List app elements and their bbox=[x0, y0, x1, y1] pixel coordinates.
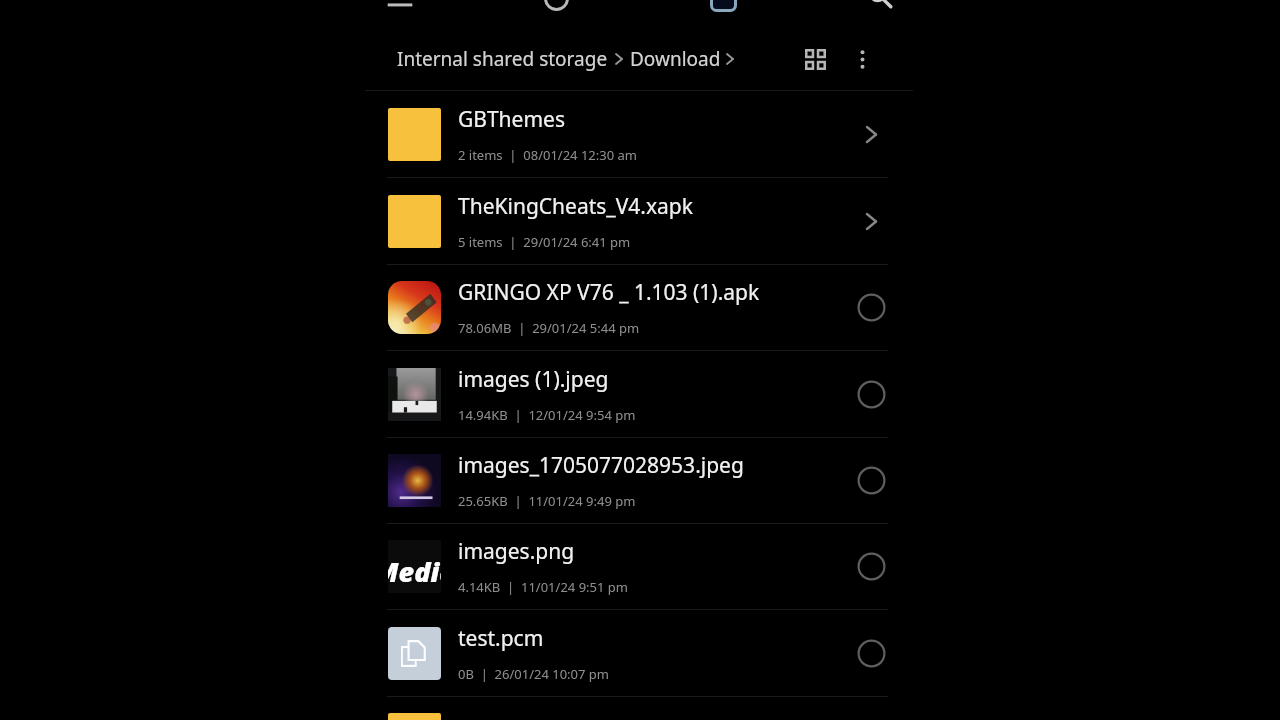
button[interactable]: Select bbox=[848, 457, 894, 503]
staticText: 78.06MB | 29/01/24 5:44 pm bbox=[458, 319, 640, 337]
button[interactable]: Open folder bbox=[848, 198, 894, 244]
button[interactable]: images (1).jpeg bbox=[363, 351, 917, 437]
button[interactable]: TheKingCheats_V4.xapk bbox=[363, 178, 917, 264]
staticText: 4.14KB | 11/01/24 9:51 pm bbox=[458, 578, 628, 596]
staticText: Download bbox=[630, 46, 721, 72]
button[interactable]: images_1705077028953.jpeg bbox=[363, 437, 917, 523]
staticText: TheKingCheats_V4.xapk bbox=[458, 192, 693, 221]
button[interactable]: Media bbox=[363, 523, 917, 609]
button[interactable]: Menu bbox=[378, 0, 422, 6]
button[interactable]: Search bbox=[864, 0, 896, 9]
button[interactable]: Recents bbox=[542, 0, 570, 12]
staticText: GBThemes bbox=[458, 105, 565, 134]
staticText: 2 items | 08/01/24 12:30 am bbox=[458, 146, 637, 164]
button[interactable]: More options bbox=[839, 36, 885, 82]
button[interactable]: Select bbox=[848, 371, 894, 417]
button[interactable]: Select bbox=[848, 543, 894, 589]
staticText: 5 items | 29/01/24 6:41 pm bbox=[458, 233, 631, 251]
button[interactable]: Grid view bbox=[792, 36, 838, 82]
button[interactable]: GBThemes bbox=[363, 91, 917, 177]
staticText: 14.94KB | 12/01/24 9:54 pm bbox=[458, 406, 636, 424]
staticText: 25.65KB | 11/01/24 9:49 pm bbox=[458, 492, 636, 510]
staticText: Internal shared storage bbox=[397, 46, 608, 72]
staticText: test.pcm bbox=[458, 624, 544, 653]
staticText: images (1).jpeg bbox=[458, 365, 609, 394]
button[interactable]: test.pcm bbox=[363, 610, 917, 696]
button[interactable]: Select bbox=[848, 284, 894, 330]
button[interactable]: Select bbox=[848, 630, 894, 676]
button[interactable]: Internal shared storage bbox=[397, 46, 734, 72]
button[interactable]: GRINGO XP V76 _ 1.103 (1).apk bbox=[363, 264, 917, 350]
staticText: images_1705077028953.jpeg bbox=[458, 451, 744, 480]
button[interactable]: TheKingCheats_V4.apk bbox=[363, 696, 917, 720]
staticText: Media bbox=[388, 553, 441, 590]
staticText: images.png bbox=[458, 537, 575, 566]
button[interactable]: Tabs bbox=[708, 0, 738, 12]
button[interactable]: Open folder bbox=[848, 111, 894, 157]
staticText: 0B | 26/01/24 10:07 pm bbox=[458, 665, 609, 683]
staticText: GRINGO XP V76 _ 1.103 (1).apk bbox=[458, 278, 760, 307]
